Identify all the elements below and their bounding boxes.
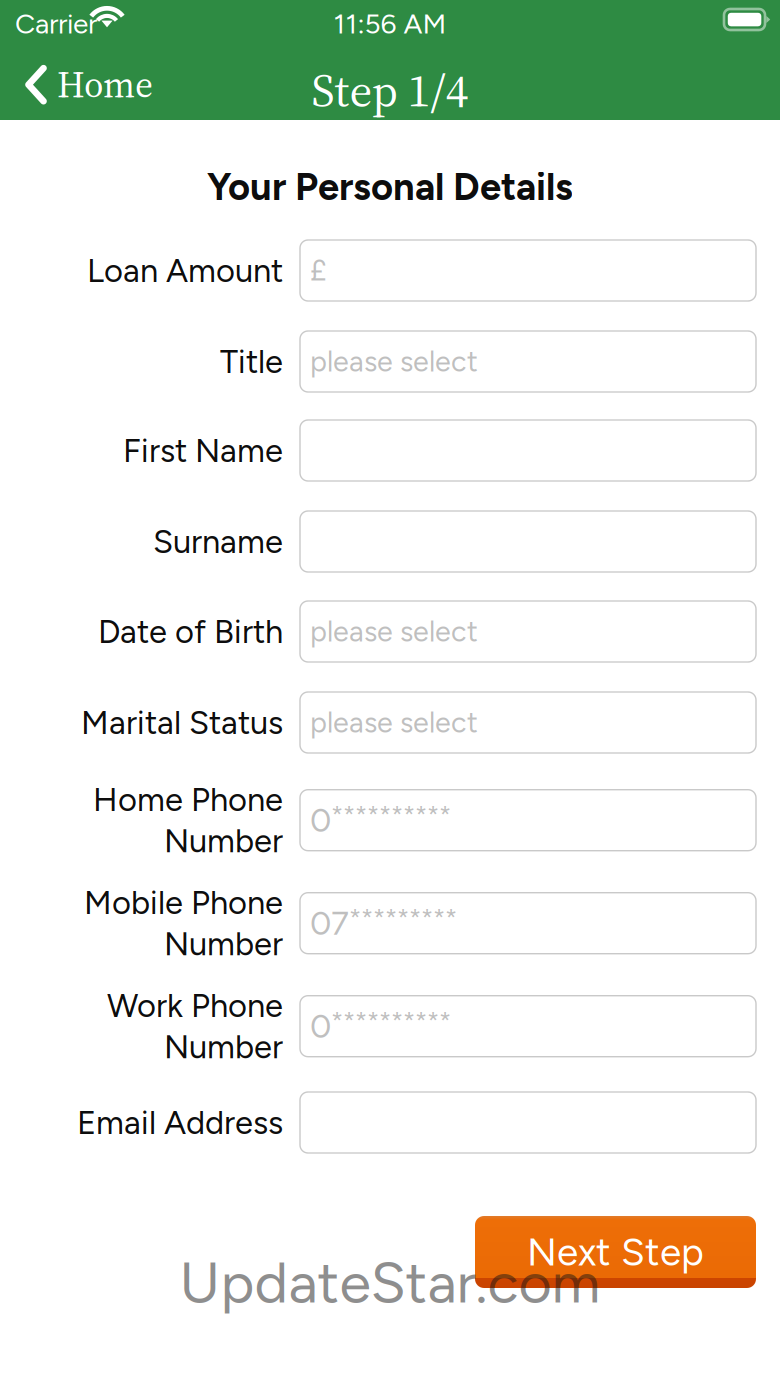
staticText: Carrier (15, 7, 97, 41)
staticText: Home Phone (93, 780, 283, 819)
staticText: Surname (153, 522, 283, 561)
button[interactable]: Next Step (475, 1216, 756, 1288)
button[interactable]: Marital Status (0, 692, 756, 753)
button[interactable]: Loan Amount (0, 240, 756, 301)
staticText: 0 (310, 1006, 331, 1046)
staticText: ********** (331, 800, 451, 830)
staticText: ********* (349, 903, 457, 933)
staticText: ********** (331, 1006, 451, 1036)
staticText: Mobile Phone (84, 883, 283, 922)
staticText: Next Step (527, 1229, 704, 1275)
staticText: Your Personal Details (207, 164, 573, 210)
staticText: please select (310, 614, 478, 649)
button[interactable]: Work Phone (0, 986, 756, 1066)
staticText: 07 (310, 903, 349, 943)
staticText: UpdateStar.com (179, 1248, 600, 1317)
staticText: please select (310, 705, 478, 740)
button[interactable]: Date of Birth (0, 601, 756, 662)
staticText: Marital Status (81, 703, 283, 742)
staticText: First Name (123, 431, 283, 470)
button[interactable]: Email Address (0, 1092, 756, 1153)
button[interactable]: Home Phone (0, 780, 756, 860)
staticText: Loan Amount (87, 251, 283, 290)
staticText: 0 (310, 800, 331, 840)
staticText: Email Address (77, 1103, 283, 1142)
staticText: Work Phone (107, 986, 283, 1025)
staticText: Home (57, 60, 153, 109)
button[interactable]: First Name (0, 420, 756, 481)
staticText: Title (220, 342, 283, 381)
staticText: Number (164, 1027, 283, 1066)
staticText: please select (310, 344, 478, 379)
staticText: Date of Birth (98, 612, 283, 651)
button[interactable]: Surname (0, 511, 756, 572)
staticText: Number (164, 924, 283, 963)
staticText: Step 1/4 (311, 58, 468, 122)
staticText: Number (164, 821, 283, 860)
button[interactable]: Mobile Phone (0, 883, 756, 963)
staticText: 11:56 AM (333, 7, 446, 41)
button[interactable]: Title (0, 331, 756, 392)
staticText: £ (310, 253, 327, 288)
button[interactable]: Home (24, 54, 153, 115)
